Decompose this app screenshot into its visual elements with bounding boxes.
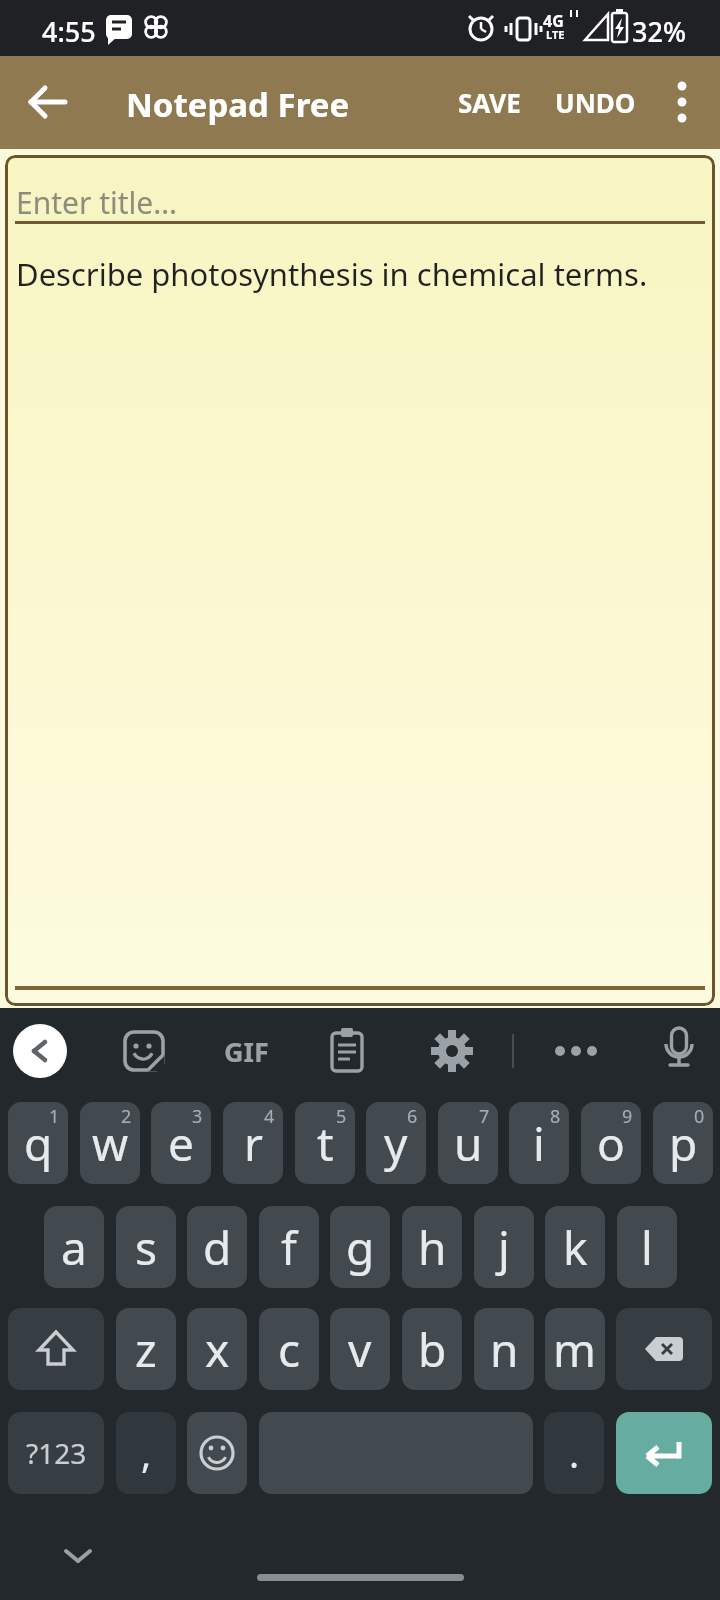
button[interactable] — [8, 1308, 104, 1390]
staticText: 0 — [694, 1104, 705, 1129]
staticText: p — [669, 1112, 698, 1175]
button[interactable] — [16, 70, 80, 134]
button[interactable]: k — [545, 1206, 605, 1288]
staticText: 6 — [407, 1104, 418, 1129]
staticText: z — [135, 1318, 157, 1381]
button[interactable] — [321, 1025, 373, 1077]
button[interactable] — [652, 70, 712, 134]
staticText: r — [244, 1112, 263, 1175]
button[interactable]: v — [330, 1308, 390, 1390]
button[interactable] — [616, 1412, 712, 1494]
staticText: SAVE — [458, 85, 521, 120]
button[interactable] — [548, 1025, 604, 1077]
staticText: f — [281, 1216, 297, 1279]
button[interactable]: j — [474, 1206, 534, 1288]
button[interactable]: o — [581, 1102, 641, 1184]
staticText: c — [278, 1318, 301, 1381]
staticText: 9 — [622, 1104, 633, 1129]
staticText: d — [203, 1216, 232, 1279]
staticText: 3 — [192, 1104, 203, 1129]
staticText: 7 — [479, 1104, 490, 1129]
button[interactable]: y — [366, 1102, 426, 1184]
staticText: LTE — [546, 27, 565, 42]
button[interactable]: i — [509, 1102, 569, 1184]
button[interactable]: n — [474, 1308, 534, 1390]
button[interactable]: SAVE — [445, 56, 533, 149]
button[interactable] — [187, 1412, 247, 1494]
button[interactable]: UNDO — [548, 56, 643, 149]
staticText: 1 — [49, 1104, 60, 1129]
staticText: . — [569, 1427, 580, 1479]
button[interactable] — [616, 1308, 712, 1390]
staticText: , — [141, 1427, 152, 1479]
staticText: w — [92, 1112, 129, 1175]
staticText: b — [418, 1318, 447, 1381]
button[interactable]: m — [545, 1308, 605, 1390]
staticText: ?123 — [26, 1434, 87, 1472]
button[interactable]: ?123 — [8, 1412, 104, 1494]
button[interactable]: c — [259, 1308, 319, 1390]
staticText: h — [418, 1216, 447, 1279]
staticText: Describe photosynthesis in chemical term… — [16, 253, 648, 295]
staticText: j — [498, 1216, 510, 1279]
button[interactable] — [257, 1574, 464, 1581]
staticText: k — [563, 1216, 588, 1279]
button[interactable]: p — [653, 1102, 713, 1184]
button[interactable]: t — [295, 1102, 355, 1184]
button[interactable]: Describe photosynthesis in chemical term… — [5, 224, 715, 984]
staticText: v — [348, 1318, 372, 1381]
staticText: n — [490, 1318, 519, 1381]
button[interactable] — [426, 1025, 478, 1077]
button[interactable]: z — [116, 1308, 176, 1390]
button[interactable]: GIF — [212, 1025, 280, 1077]
staticText: a — [61, 1216, 87, 1279]
staticText: 5 — [336, 1104, 347, 1129]
button[interactable]: f — [259, 1206, 319, 1288]
staticText: i — [533, 1112, 545, 1175]
staticText: 4:55 — [42, 13, 96, 50]
button[interactable]: g — [330, 1206, 390, 1288]
staticText: l — [641, 1216, 653, 1279]
staticText: 2 — [121, 1104, 132, 1129]
button[interactable]: x — [187, 1308, 247, 1390]
staticText: Enter title… — [16, 182, 177, 223]
button[interactable]: q — [8, 1102, 68, 1184]
staticText: u — [454, 1112, 483, 1175]
staticText: m — [553, 1318, 597, 1381]
button[interactable] — [54, 1540, 102, 1570]
button[interactable] — [118, 1025, 170, 1077]
button[interactable]: u — [438, 1102, 498, 1184]
button[interactable]: , — [116, 1412, 176, 1494]
staticText: x — [205, 1318, 230, 1381]
button[interactable]: s — [116, 1206, 176, 1288]
staticText: Notepad Free — [126, 82, 350, 127]
button[interactable]: e — [151, 1102, 211, 1184]
button[interactable]: l — [617, 1206, 677, 1288]
staticText: y — [384, 1112, 408, 1175]
staticText: o — [597, 1112, 625, 1175]
staticText: q — [24, 1112, 53, 1175]
staticText: UNDO — [555, 85, 636, 120]
staticText: e — [168, 1112, 194, 1175]
staticText: g — [346, 1216, 375, 1279]
staticText: GIF — [224, 1033, 269, 1070]
button[interactable]: b — [402, 1308, 462, 1390]
staticText: s — [135, 1216, 158, 1279]
button[interactable] — [652, 1023, 706, 1079]
button[interactable]: w — [80, 1102, 140, 1184]
button[interactable]: . — [544, 1412, 604, 1494]
staticText: 8 — [550, 1104, 561, 1129]
staticText: 32% — [632, 13, 686, 50]
staticText: 4G — [543, 10, 564, 32]
button[interactable]: r — [223, 1102, 283, 1184]
staticText: 4 — [264, 1104, 275, 1129]
button[interactable]: h — [402, 1206, 462, 1288]
button[interactable]: d — [187, 1206, 247, 1288]
button[interactable]: Enter title… — [5, 155, 715, 223]
button[interactable]: a — [44, 1206, 104, 1288]
button[interactable] — [13, 1024, 67, 1078]
staticText: t — [317, 1112, 334, 1175]
